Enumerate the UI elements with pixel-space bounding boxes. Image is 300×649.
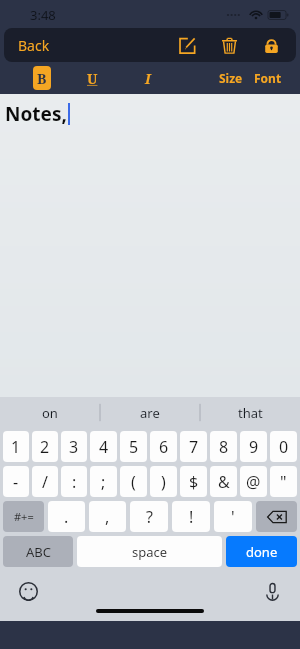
- staticText: 3: [69, 436, 79, 458]
- staticText: 0: [279, 436, 289, 458]
- staticText: Back: [18, 36, 50, 55]
- staticText: are: [140, 404, 160, 422]
- button[interactable]: 6: [150, 431, 177, 462]
- staticText: that: [238, 404, 263, 422]
- staticText: Notes,: [5, 101, 67, 127]
- staticText: 8: [219, 436, 229, 458]
- staticText: ABC: [26, 543, 51, 561]
- staticText: /: [42, 471, 48, 493]
- button[interactable]: :: [61, 466, 87, 497]
- staticText: 2: [40, 436, 50, 458]
- staticText: U: [87, 69, 98, 88]
- button[interactable]: Dictate: [260, 579, 284, 603]
- button[interactable]: Backspace: [256, 501, 297, 532]
- button[interactable]: (: [120, 466, 147, 497]
- button[interactable]: Delete: [214, 30, 244, 60]
- staticText: on: [42, 404, 58, 422]
- button[interactable]: Size: [219, 66, 243, 90]
- button[interactable]: 5: [120, 431, 147, 462]
- staticText: -: [13, 471, 19, 493]
- staticText: ': [231, 506, 235, 528]
- staticText: Size: [219, 70, 243, 86]
- staticText: #+=: [14, 509, 34, 524]
- button[interactable]: ?: [130, 501, 168, 532]
- staticText: ;: [101, 471, 106, 493]
- button[interactable]: Back: [18, 36, 50, 55]
- button[interactable]: ,: [89, 501, 126, 532]
- button[interactable]: 2: [32, 431, 58, 462]
- staticText: Font: [254, 70, 282, 86]
- staticText: 4: [99, 436, 109, 458]
- staticText: !: [189, 506, 194, 528]
- button[interactable]: 8: [210, 431, 237, 462]
- button[interactable]: &: [210, 466, 237, 497]
- button[interactable]: ': [214, 501, 252, 532]
- staticText: &: [218, 471, 230, 493]
- staticText: ,: [105, 506, 110, 528]
- staticText: ?: [146, 506, 153, 528]
- button[interactable]: /: [32, 466, 58, 497]
- staticText: 5: [129, 436, 139, 458]
- button[interactable]: 1: [3, 431, 29, 462]
- button[interactable]: @: [240, 466, 267, 497]
- staticText: I: [145, 69, 151, 88]
- button[interactable]: -: [3, 466, 29, 497]
- button[interactable]: done: [226, 536, 297, 567]
- button[interactable]: Notes,: [0, 94, 300, 397]
- button[interactable]: U: [81, 66, 103, 90]
- staticText: 7: [189, 436, 199, 458]
- button[interactable]: 3: [61, 431, 87, 462]
- button[interactable]: 9: [240, 431, 267, 462]
- button[interactable]: ): [150, 466, 177, 497]
- staticText: .: [64, 506, 69, 528]
- button[interactable]: Font: [254, 66, 282, 90]
- staticText: space: [132, 543, 168, 561]
- button[interactable]: ABC: [3, 536, 73, 567]
- button[interactable]: Compose: [172, 30, 202, 60]
- staticText: $: [189, 471, 199, 493]
- button[interactable]: !: [172, 501, 210, 532]
- button[interactable]: $: [180, 466, 207, 497]
- staticText: ): [161, 471, 166, 493]
- button[interactable]: I: [137, 66, 159, 90]
- button[interactable]: on: [0, 397, 100, 428]
- button[interactable]: Lock: [256, 30, 286, 60]
- button[interactable]: Emoji: [16, 579, 40, 603]
- button[interactable]: 7: [180, 431, 207, 462]
- button[interactable]: ;: [90, 466, 117, 497]
- button[interactable]: B: [33, 66, 51, 90]
- staticText: done: [246, 543, 278, 561]
- staticText: ": [280, 471, 287, 493]
- staticText: (: [131, 471, 136, 493]
- staticText: 9: [249, 436, 259, 458]
- button[interactable]: #+=: [3, 501, 44, 532]
- staticText: 3:48: [30, 6, 56, 24]
- staticText: @: [246, 471, 261, 493]
- staticText: 1: [11, 436, 21, 458]
- button[interactable]: 4: [90, 431, 117, 462]
- button[interactable]: 0: [270, 431, 297, 462]
- staticText: B: [37, 69, 47, 88]
- button[interactable]: .: [48, 501, 85, 532]
- button[interactable]: space: [77, 536, 222, 567]
- staticText: :: [72, 471, 77, 493]
- button[interactable]: that: [200, 397, 300, 428]
- button[interactable]: ": [270, 466, 297, 497]
- button[interactable]: are: [100, 397, 200, 428]
- staticText: 6: [159, 436, 169, 458]
